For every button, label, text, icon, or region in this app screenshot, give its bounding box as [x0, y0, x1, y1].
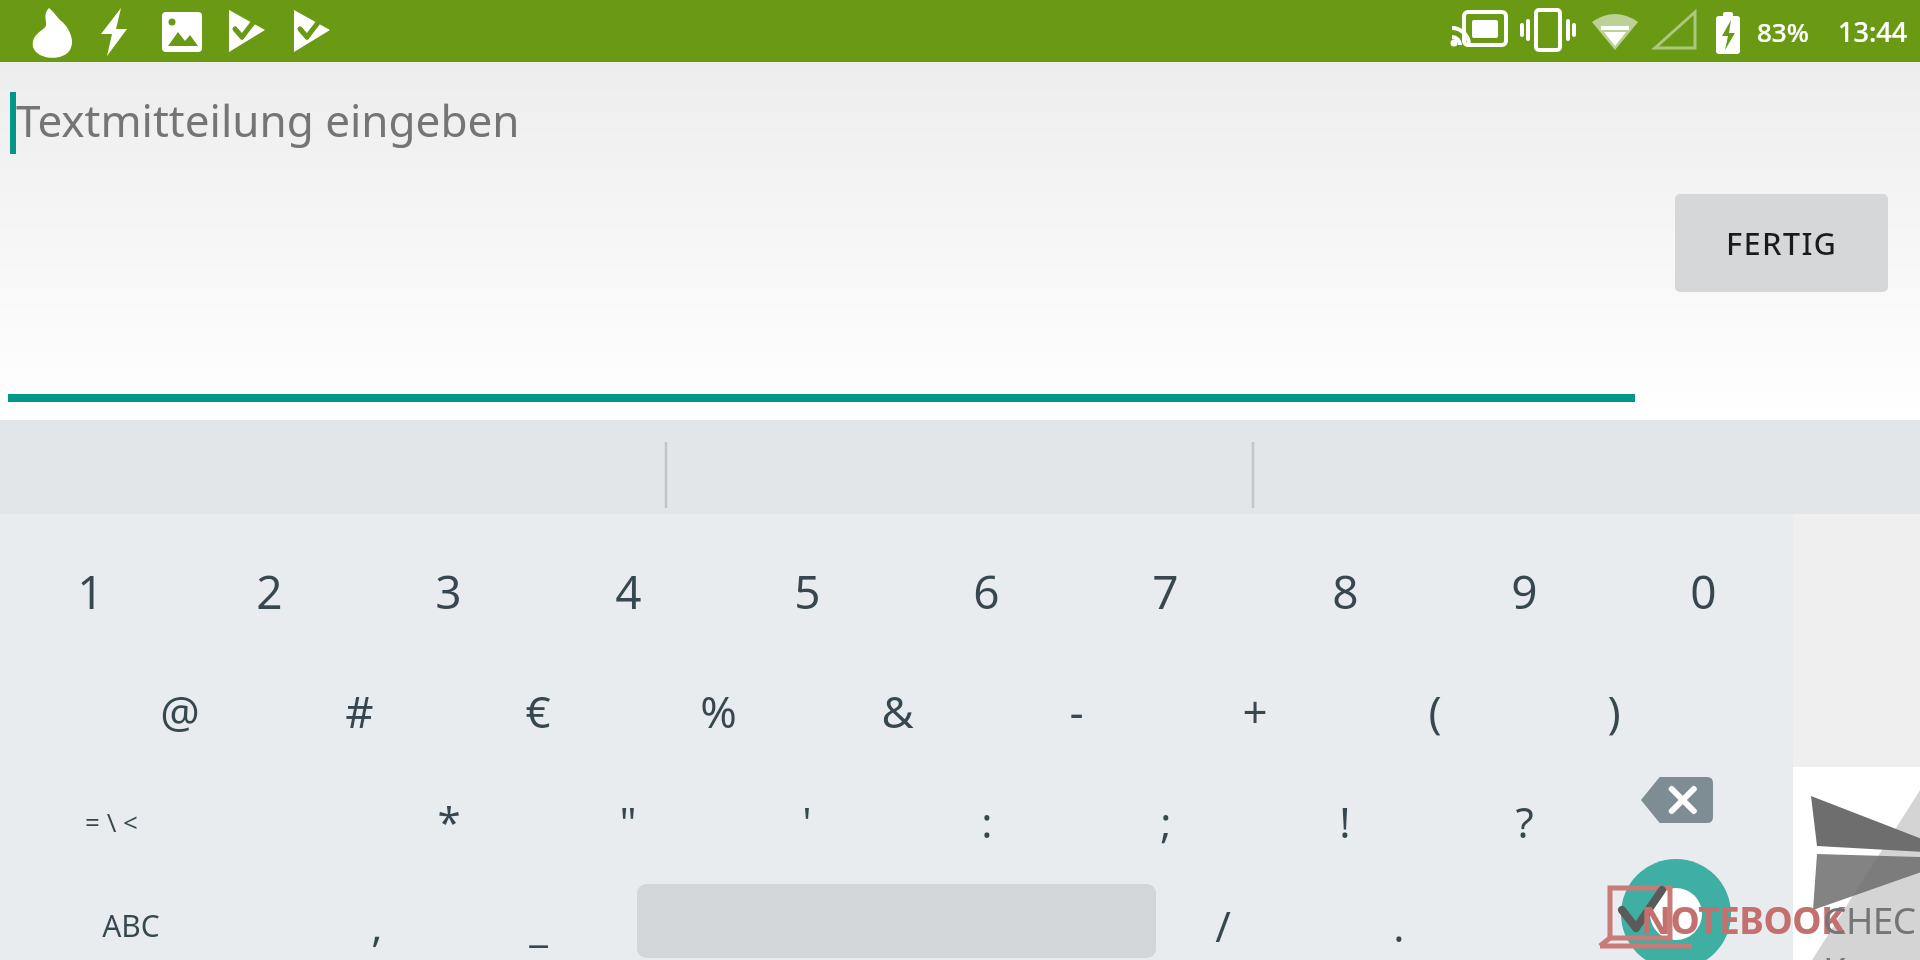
staticText: 0: [1690, 560, 1717, 623]
staticText: #: [345, 681, 374, 741]
button[interactable]: ": [558, 775, 698, 867]
staticText: _: [529, 897, 548, 954]
button[interactable]: :: [917, 775, 1057, 867]
staticText: 3: [435, 560, 462, 623]
button[interactable]: 2: [199, 545, 339, 637]
button[interactable]: #: [289, 665, 429, 757]
staticText: FERTIG: [1726, 222, 1838, 264]
staticText: Textmitteilung eingeben: [16, 90, 520, 150]
staticText: NOTEBOOK: [1641, 894, 1846, 944]
button[interactable]: 5: [737, 545, 877, 637]
button[interactable]: ;: [1096, 775, 1236, 867]
staticText: 8: [1332, 560, 1359, 623]
staticText: .: [1393, 897, 1405, 954]
staticText: ': [802, 793, 812, 850]
staticText: &: [881, 681, 914, 741]
staticText: -: [1069, 681, 1084, 741]
staticText: (: [1428, 681, 1442, 741]
button[interactable]: 8: [1275, 545, 1415, 637]
button[interactable]: 1: [20, 545, 160, 637]
button[interactable]: %: [648, 665, 788, 757]
staticText: ABC: [102, 905, 160, 946]
staticText: 9: [1511, 560, 1538, 623]
staticText: CHECK: [1823, 894, 1920, 960]
button[interactable]: ABC: [61, 890, 201, 960]
staticText: %: [700, 681, 737, 741]
button[interactable]: 7: [1095, 545, 1235, 637]
staticText: ;: [1160, 793, 1172, 850]
staticText: 2: [256, 560, 283, 623]
staticText: +: [1242, 681, 1268, 741]
staticText: :: [981, 793, 993, 850]
staticText: €: [525, 681, 551, 741]
button[interactable]: /: [1153, 890, 1293, 960]
button[interactable]: +: [1185, 665, 1325, 757]
button[interactable]: 3: [378, 545, 518, 637]
button[interactable]: Backspace: [1622, 758, 1732, 842]
staticText: 6: [973, 560, 1000, 623]
button[interactable]: !: [1275, 775, 1415, 867]
button[interactable]: ): [1544, 665, 1684, 757]
button[interactable]: _: [468, 890, 608, 960]
staticText: 1: [77, 560, 104, 623]
button[interactable]: €: [468, 665, 608, 757]
button[interactable]: Send: [1793, 767, 1920, 960]
button[interactable]: .: [1329, 890, 1469, 960]
staticText: ): [1607, 681, 1621, 741]
button[interactable]: FERTIG: [1675, 194, 1888, 292]
staticText: = \ <: [85, 804, 138, 839]
staticText: ?: [1515, 793, 1534, 850]
button[interactable]: ?: [1454, 775, 1594, 867]
staticText: !: [1339, 793, 1351, 850]
staticText: 7: [1152, 560, 1179, 623]
button[interactable]: = \ <: [41, 775, 181, 867]
button[interactable]: (: [1365, 665, 1505, 757]
staticText: 4: [615, 560, 642, 623]
staticText: ": [619, 793, 637, 850]
staticText: /: [1215, 897, 1231, 954]
button[interactable]: ': [737, 775, 877, 867]
button[interactable]: &: [827, 665, 967, 757]
button[interactable]: Textmitteilung eingeben: [0, 62, 1920, 420]
staticText: ,: [371, 897, 383, 954]
button[interactable]: 9: [1454, 545, 1594, 637]
staticText: *: [437, 793, 461, 850]
button[interactable]: *: [379, 775, 519, 867]
staticText: 13:44: [1838, 13, 1908, 50]
button[interactable]: @: [110, 665, 250, 757]
staticText: 83%: [1757, 14, 1809, 49]
button[interactable]: 0: [1633, 545, 1773, 637]
staticText: @: [160, 681, 200, 741]
button[interactable]: 4: [558, 545, 698, 637]
staticText: 5: [794, 560, 821, 623]
button[interactable]: 6: [916, 545, 1056, 637]
button[interactable]: -: [1006, 665, 1146, 757]
button[interactable]: ,: [307, 890, 447, 960]
